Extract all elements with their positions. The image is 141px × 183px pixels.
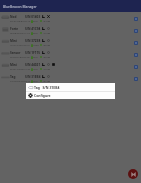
staticText: C3:2D:90:C6:E9:14: [10, 79, 31, 82]
button[interactable]: Device info: [134, 53, 138, 57]
staticText: 8C:B1:99:8D:C1:4F: [10, 67, 31, 70]
button[interactable]: Device info: [134, 41, 138, 45]
button[interactable]: Configure: [26, 92, 115, 99]
staticText: 87%: [33, 19, 38, 22]
button[interactable]: Tag S/N 31EB4: [26, 83, 115, 91]
button[interactable]: Device info: [134, 77, 138, 81]
button[interactable]: Device info: [134, 65, 138, 69]
staticText: 89%: [33, 31, 38, 34]
staticText: 92%: [33, 55, 38, 58]
staticText: Nod: [10, 15, 17, 19]
staticText: Tag S/N 31EB4: [34, 85, 60, 90]
staticText: -66 dB: [43, 43, 51, 46]
staticText: FF:05:81:B0:6C:06: [10, 55, 30, 58]
staticText: -70 dB: [43, 67, 51, 70]
staticText: 78%: [33, 67, 38, 70]
staticText: -64 dB: [43, 19, 51, 22]
staticText: S/N 1F115: [25, 51, 41, 55]
button[interactable]: Tag: [0, 72, 141, 84]
button[interactable]: Forte: [0, 24, 141, 36]
staticText: Forte: [10, 27, 19, 31]
staticText: S/N 31EB4: [25, 75, 41, 79]
staticText: BlueBeacon Manager: [3, 4, 37, 8]
staticText: S/N 41C94: [25, 27, 41, 31]
button[interactable]: Device info: [134, 17, 138, 21]
staticText: -68 dB: [43, 55, 51, 58]
button[interactable]: Device info: [134, 29, 138, 33]
staticText: Mini: [10, 63, 17, 67]
button[interactable]: Mini: [0, 36, 141, 48]
staticText: -61 dB: [43, 79, 51, 82]
staticText: -72 dB: [43, 31, 51, 34]
staticText: S/N 44021: [25, 63, 41, 67]
staticText: Mini: [10, 39, 17, 43]
button[interactable]: Scan for beacons: [128, 169, 138, 179]
staticText: Configure: [34, 93, 51, 98]
staticText: 100%: [33, 43, 40, 46]
button[interactable]: Nod: [0, 12, 141, 24]
staticText: Sensor: [10, 51, 21, 55]
staticText: D7:5A:3E:B7:6A:1E: [10, 19, 31, 22]
staticText: 0E:8B:55:8F:71:A3: [10, 31, 30, 34]
staticText: 95%: [33, 79, 38, 82]
staticText: 1F:2C:C4:E7:3C:91: [10, 43, 30, 46]
staticText: S/N 01403: [25, 15, 41, 19]
button[interactable]: Sensor: [0, 48, 141, 60]
button[interactable]: BlueBeacon Manager: [0, 0, 141, 12]
button[interactable]: Mini: [0, 60, 141, 72]
staticText: Tag: [10, 75, 16, 79]
staticText: S/N 37238: [25, 39, 41, 43]
